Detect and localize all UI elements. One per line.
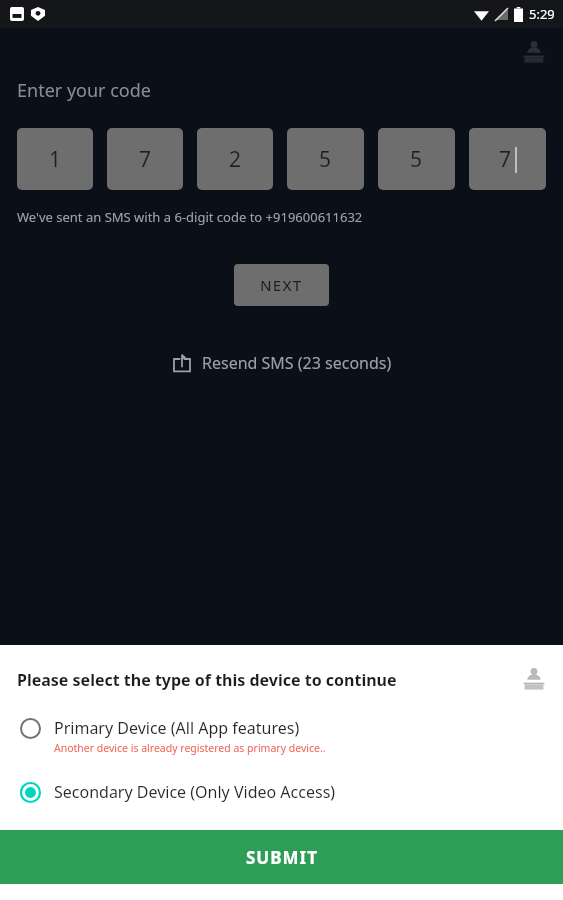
button[interactable]: 7 xyxy=(107,128,183,190)
button[interactable]: Support agent xyxy=(517,663,551,697)
staticText: 7 xyxy=(499,145,512,174)
staticText: 5 xyxy=(410,145,423,174)
staticText: Primary Device (All App features) xyxy=(54,717,300,739)
staticText: We've sent an SMS with a 6-digit code to… xyxy=(17,208,363,226)
staticText: SUBMIT xyxy=(246,846,318,869)
staticText: 2 xyxy=(229,145,242,174)
button[interactable]: 7 xyxy=(469,128,546,190)
staticText: NEXT xyxy=(260,275,303,295)
staticText: Please select the type of this device to… xyxy=(17,669,517,691)
button[interactable]: 5 xyxy=(378,128,455,190)
button[interactable]: 1 xyxy=(17,128,93,190)
staticText: 5:29 xyxy=(529,5,555,23)
staticText: 7 xyxy=(139,145,152,174)
button[interactable]: 2 xyxy=(197,128,273,190)
button[interactable]: NEXT xyxy=(234,264,329,306)
button[interactable]: Secondary Device (Only Video Access) xyxy=(0,781,563,803)
button[interactable]: Support agent xyxy=(517,36,551,70)
staticText: Secondary Device (Only Video Access) xyxy=(54,781,336,803)
staticText: Enter your code xyxy=(17,78,151,103)
button[interactable]: Primary Device (All App features) xyxy=(0,717,563,755)
staticText: 1 xyxy=(49,145,62,174)
button[interactable]: Resend SMS (23 seconds) xyxy=(162,346,402,380)
staticText: Resend SMS (23 seconds) xyxy=(202,352,392,374)
staticText: Another device is already registered as … xyxy=(54,741,326,755)
staticText: 5 xyxy=(319,145,332,174)
button[interactable]: 5 xyxy=(287,128,364,190)
button[interactable]: SUBMIT xyxy=(0,830,563,884)
